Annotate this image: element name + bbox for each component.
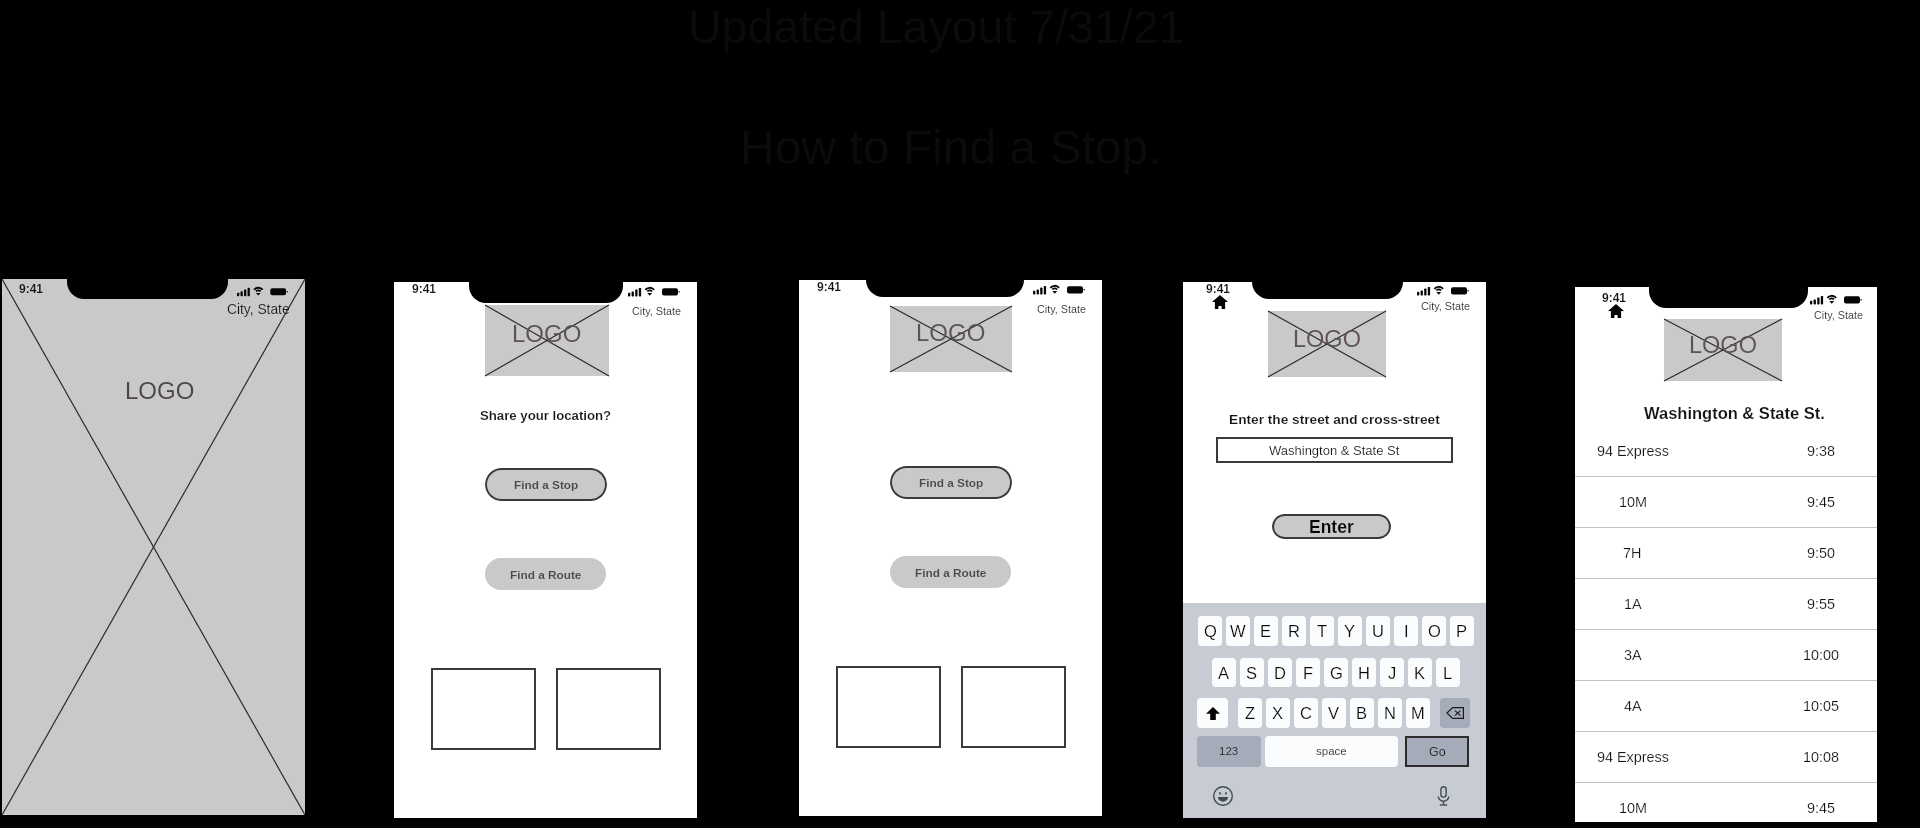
- button[interactable]: Y: [1338, 616, 1362, 646]
- button[interactable]: Find a Stop: [485, 468, 607, 501]
- staticText: 9:41: [1602, 291, 1627, 304]
- staticText: 10M: [1619, 494, 1647, 510]
- staticText: 1A: [1624, 596, 1642, 612]
- button[interactable]: [556, 668, 661, 750]
- staticText: 9:45: [1807, 494, 1836, 510]
- button[interactable]: 4A: [1575, 680, 1877, 731]
- staticText: H: [1358, 664, 1370, 682]
- staticText: City, State: [632, 305, 682, 317]
- button[interactable]: N: [1378, 698, 1402, 728]
- staticText: F: [1303, 664, 1314, 682]
- button[interactable]: Go: [1405, 736, 1469, 767]
- staticText: W: [1230, 622, 1246, 640]
- button[interactable]: P: [1450, 616, 1474, 646]
- button[interactable]: U: [1366, 616, 1390, 646]
- button[interactable]: Find a Route: [890, 556, 1011, 588]
- button[interactable]: E: [1254, 616, 1278, 646]
- staticText: 10:08: [1803, 749, 1840, 765]
- staticText: 9:50: [1807, 545, 1836, 561]
- button[interactable]: Find a Stop: [890, 466, 1012, 499]
- button[interactable]: X: [1266, 698, 1290, 728]
- button[interactable]: A: [1212, 658, 1236, 687]
- staticText: 9:41: [412, 282, 437, 295]
- staticText: City, State: [1037, 303, 1087, 315]
- button[interactable]: V: [1322, 698, 1346, 728]
- button[interactable]: Backspace: [1440, 698, 1470, 728]
- button[interactable]: R: [1282, 616, 1306, 646]
- staticText: Enter: [1309, 517, 1354, 537]
- button[interactable]: Microphone: [1437, 786, 1450, 806]
- button[interactable]: Z: [1238, 698, 1262, 728]
- button[interactable]: S: [1240, 658, 1264, 687]
- staticText: K: [1414, 664, 1426, 682]
- staticText: O: [1428, 622, 1441, 640]
- button[interactable]: [431, 668, 536, 750]
- button[interactable]: D: [1268, 658, 1292, 687]
- staticText: How to Find a Stop.: [740, 121, 1162, 175]
- staticText: U: [1372, 622, 1384, 640]
- button[interactable]: T: [1310, 616, 1334, 646]
- button[interactable]: O: [1422, 616, 1446, 646]
- button[interactable]: Emoji: [1213, 786, 1233, 806]
- staticText: 9:41: [817, 280, 842, 293]
- button[interactable]: Enter: [1272, 514, 1391, 539]
- staticText: 9:41: [19, 282, 44, 295]
- staticText: P: [1456, 622, 1468, 640]
- button[interactable]: G: [1324, 658, 1348, 687]
- button[interactable]: Shift: [1197, 698, 1228, 728]
- staticText: 94 Express: [1597, 749, 1669, 765]
- staticText: 10M: [1619, 800, 1647, 816]
- button[interactable]: 94 Express: [1575, 731, 1877, 782]
- staticText: Y: [1344, 622, 1356, 640]
- button[interactable]: M: [1406, 698, 1430, 728]
- staticText: G: [1330, 664, 1343, 682]
- staticText: Washington & State St: [1269, 443, 1400, 458]
- staticText: 10:05: [1803, 698, 1840, 714]
- staticText: City, State: [1814, 309, 1864, 321]
- staticText: City, State: [227, 302, 290, 317]
- staticText: I: [1404, 622, 1409, 640]
- button[interactable]: C: [1294, 698, 1318, 728]
- staticText: 9:55: [1807, 596, 1836, 612]
- staticText: Find a Stop: [514, 478, 579, 491]
- button[interactable]: space: [1265, 736, 1398, 767]
- staticText: B: [1356, 704, 1368, 722]
- button[interactable]: H: [1352, 658, 1376, 687]
- button[interactable]: 3A: [1575, 629, 1877, 680]
- staticText: LOGO: [1689, 332, 1757, 358]
- button[interactable]: B: [1350, 698, 1374, 728]
- button[interactable]: 10M: [1575, 782, 1877, 828]
- button[interactable]: 10M: [1575, 476, 1877, 527]
- button[interactable]: I: [1394, 616, 1418, 646]
- staticText: 9:45: [1807, 800, 1836, 816]
- staticText: 7H: [1623, 545, 1642, 561]
- button[interactable]: F: [1296, 658, 1320, 687]
- staticText: City, State: [1421, 300, 1471, 312]
- staticText: Z: [1245, 704, 1256, 722]
- button[interactable]: K: [1408, 658, 1432, 687]
- button[interactable]: [961, 666, 1066, 748]
- staticText: L: [1443, 664, 1453, 682]
- button[interactable]: Washington & State St: [1216, 437, 1453, 463]
- button[interactable]: L: [1436, 658, 1460, 687]
- button[interactable]: 7H: [1575, 527, 1877, 578]
- button[interactable]: Home: [1212, 295, 1228, 309]
- staticText: space: [1316, 745, 1347, 758]
- button[interactable]: 94 Express: [1575, 425, 1877, 476]
- staticText: LOGO: [916, 319, 986, 346]
- button[interactable]: [836, 666, 941, 748]
- staticText: Go: [1429, 745, 1446, 759]
- staticText: R: [1288, 622, 1300, 640]
- button[interactable]: 1A: [1575, 578, 1877, 629]
- button[interactable]: W: [1226, 616, 1250, 646]
- button[interactable]: Q: [1198, 616, 1222, 646]
- button[interactable]: Find a Route: [485, 558, 606, 590]
- staticText: J: [1388, 664, 1397, 682]
- staticText: Q: [1204, 622, 1217, 640]
- button[interactable]: 123: [1197, 736, 1261, 767]
- staticText: A: [1218, 664, 1230, 682]
- button[interactable]: Home: [1608, 304, 1624, 318]
- button[interactable]: J: [1380, 658, 1404, 687]
- staticText: M: [1411, 704, 1425, 722]
- staticText: Washington & State St.: [1644, 404, 1825, 422]
